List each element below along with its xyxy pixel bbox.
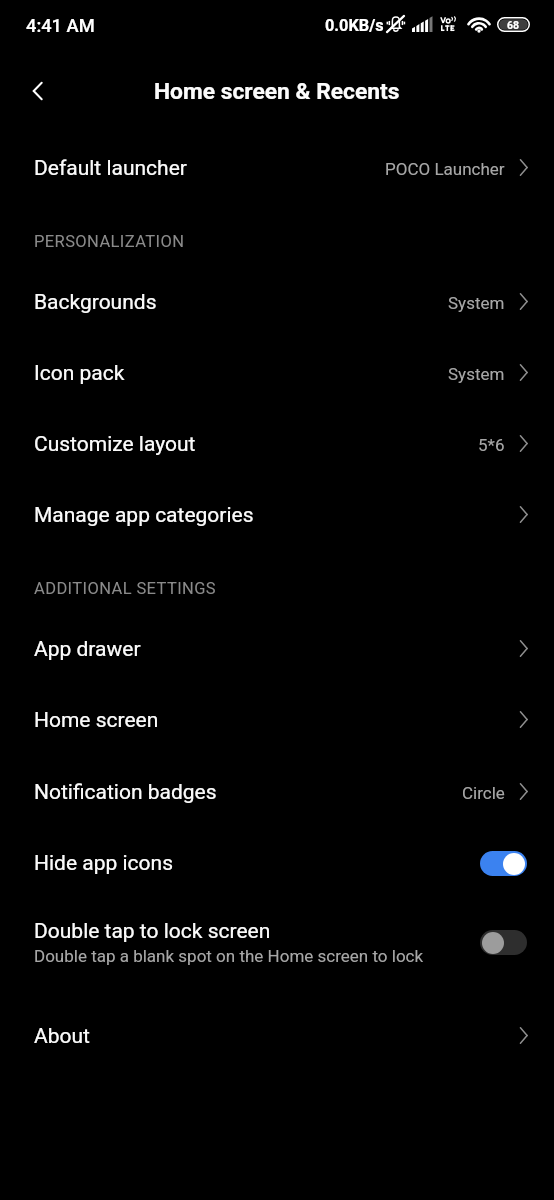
button[interactable]: Backgrounds xyxy=(0,267,554,338)
staticText: 5*6 xyxy=(478,435,505,455)
staticText: Default launcher xyxy=(34,156,187,181)
staticText: Double tap a blank spot on the Home scre… xyxy=(34,946,424,966)
staticText: About xyxy=(34,1024,90,1049)
staticText: Home screen xyxy=(34,708,159,733)
button[interactable]: Double tap to lock screen xyxy=(0,907,554,978)
staticText: Icon pack xyxy=(34,361,125,386)
staticText: ADDITIONAL SETTINGS xyxy=(34,579,217,598)
staticText: System xyxy=(448,293,505,313)
staticText: PERSONALIZATION xyxy=(34,232,185,251)
button[interactable]: Customize layout xyxy=(0,409,554,480)
staticText: POCO Launcher xyxy=(385,159,505,179)
button[interactable]: About xyxy=(0,1001,554,1072)
staticText: Backgrounds xyxy=(34,290,157,315)
staticText: Hide app icons xyxy=(34,851,174,876)
button[interactable]: App drawer xyxy=(0,614,554,685)
staticText: System xyxy=(448,364,505,384)
staticText: Double tap to lock screen xyxy=(34,919,271,944)
staticText: 4:41 AM xyxy=(26,15,95,36)
staticText: 68 xyxy=(507,19,520,31)
staticText: Home screen & Recents xyxy=(154,78,400,105)
button[interactable]: Icon pack xyxy=(0,338,554,409)
staticText: 0.0KB/s xyxy=(325,16,384,35)
staticText: Notification badges xyxy=(34,780,217,805)
button[interactable]: Home screen xyxy=(0,685,554,756)
button[interactable]: Toggle xyxy=(480,851,527,876)
staticText: Customize layout xyxy=(34,432,196,457)
button[interactable]: Manage app categories xyxy=(0,480,554,551)
staticText: App drawer xyxy=(34,637,141,662)
button[interactable]: Hide app icons xyxy=(0,828,554,899)
staticText: Manage app categories xyxy=(34,503,254,528)
staticText: Circle xyxy=(462,783,505,803)
button[interactable]: Default launcher xyxy=(0,133,554,204)
button[interactable]: Back xyxy=(14,69,58,113)
button[interactable]: Notification badges xyxy=(0,757,554,828)
button[interactable]: Toggle xyxy=(480,930,527,955)
